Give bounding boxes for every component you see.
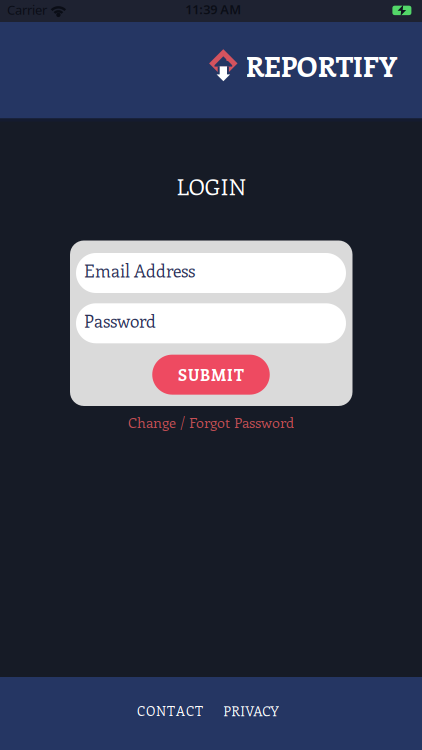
button[interactable]: C O N T A C T	[137, 702, 203, 719]
staticText: C O N T A C T	[137, 702, 203, 719]
staticText: Email Address	[84, 259, 195, 282]
button[interactable]: PRIVACY	[223, 702, 279, 720]
button[interactable]: S U B M I T	[152, 355, 270, 395]
button[interactable]: Change / Forgot Password	[128, 413, 294, 432]
staticText: REPORTIFY	[246, 47, 397, 84]
staticText: Change / Forgot Password	[128, 413, 294, 432]
staticText: 11:39 AM	[185, 1, 241, 18]
staticText: S U B M I T	[178, 364, 244, 385]
staticText: PRIVACY	[223, 702, 279, 720]
button[interactable]: Password	[76, 303, 346, 343]
staticText: Carrier	[7, 1, 47, 18]
button[interactable]: Email Address	[76, 253, 346, 293]
staticText: LOGIN	[176, 171, 245, 201]
staticText: Password	[84, 309, 156, 332]
